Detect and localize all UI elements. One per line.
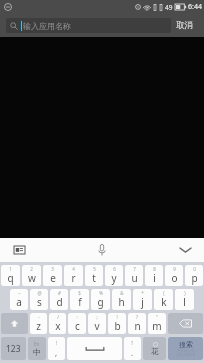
button[interactable]: Search (168, 337, 203, 360)
staticText: ) (184, 290, 186, 296)
button[interactable]: 7 (125, 265, 143, 286)
button[interactable]: En (28, 337, 46, 360)
staticText: w (28, 271, 36, 285)
button[interactable]: # (50, 289, 68, 310)
button[interactable]: / (49, 313, 66, 334)
button[interactable]: - (30, 313, 47, 334)
button[interactable]: " (148, 313, 166, 334)
staticText: z (36, 319, 41, 333)
button[interactable]: 取消 (171, 17, 198, 34)
button[interactable]: % (91, 289, 110, 310)
staticText: 搜索 (179, 340, 193, 349)
button[interactable]: 2 (22, 265, 41, 286)
button[interactable]: 5 (85, 265, 103, 286)
staticText: ~ (18, 290, 21, 296)
button[interactable]: 输入应用名称 (6, 18, 171, 33)
staticText: 花 (151, 347, 159, 356)
button[interactable]: ~ (10, 289, 28, 310)
staticText: o (171, 271, 178, 285)
button[interactable]: & (112, 289, 131, 310)
staticText: i (153, 271, 156, 285)
staticText: 49 (165, 3, 173, 12)
button[interactable]: Backspace (168, 313, 203, 334)
button[interactable]: 1 (1, 265, 20, 286)
staticText: f (78, 295, 82, 309)
staticText: n (134, 319, 141, 333)
button[interactable]: Voice input (91, 239, 113, 261)
button[interactable]: Clipboard (9, 240, 29, 260)
staticText: 输入应用名称 (23, 21, 71, 31)
button[interactable]: ) (175, 289, 194, 310)
staticText: v (94, 319, 100, 333)
button[interactable]: ? (124, 337, 141, 360)
staticText: j (141, 295, 144, 309)
button[interactable]: Shift (1, 313, 28, 334)
staticText: ? (136, 314, 138, 320)
staticText: En (34, 341, 40, 347)
staticText: - (38, 314, 40, 320)
button[interactable]: Hide keyboard (175, 240, 195, 260)
staticText: 123 (6, 343, 21, 355)
staticText: t (92, 271, 96, 285)
button[interactable]: Space (67, 337, 122, 360)
staticText: " (156, 314, 158, 320)
staticText: g (97, 295, 104, 309)
staticText: d (56, 295, 63, 309)
button[interactable]: 8 (145, 265, 163, 286)
button[interactable]: 花 (143, 337, 166, 360)
staticText: p (191, 271, 198, 285)
button[interactable]: 4 (64, 265, 83, 286)
staticText: c (75, 319, 80, 333)
staticText: 9 (173, 266, 176, 272)
button[interactable]: ! (48, 337, 65, 360)
staticText: 0 (193, 266, 196, 272)
staticText: 7 (133, 266, 136, 272)
staticText: , (55, 347, 58, 358)
staticText: 中 (33, 347, 41, 357)
staticText: 5 (93, 266, 96, 272)
staticText: @ (37, 290, 42, 296)
button[interactable]: ? (128, 313, 146, 334)
staticText: : (76, 314, 78, 320)
staticText: 1 (9, 266, 12, 272)
button[interactable]: ! (108, 313, 126, 334)
staticText: ! (56, 340, 58, 347)
staticText: $ (78, 290, 81, 296)
staticText: ! (116, 314, 118, 320)
staticText: a (16, 295, 22, 309)
button[interactable]: 123 (1, 337, 26, 360)
staticText: u (131, 271, 138, 285)
staticText: h (118, 295, 125, 309)
staticText: y (111, 271, 117, 285)
staticText: ( (163, 290, 165, 296)
button[interactable]: 3 (43, 265, 62, 286)
staticText: x (55, 319, 61, 333)
staticText: k (161, 295, 167, 309)
button[interactable]: ( (154, 289, 173, 310)
staticText: ; (96, 314, 98, 320)
button[interactable]: * (133, 289, 152, 310)
staticText: & (120, 290, 124, 296)
staticText: ? (131, 340, 134, 347)
staticText: e (50, 271, 56, 285)
staticText: % (99, 290, 103, 296)
button[interactable]: $ (70, 289, 89, 310)
button[interactable]: 9 (165, 265, 183, 286)
staticText: * (141, 290, 144, 296)
staticText: / (57, 314, 59, 320)
button[interactable]: ; (88, 313, 106, 334)
staticText: . (131, 347, 134, 358)
staticText: # (58, 290, 61, 296)
button[interactable]: 0 (185, 265, 203, 286)
staticText: m (152, 319, 162, 333)
button[interactable]: : (68, 313, 86, 334)
staticText: 6 (113, 266, 116, 272)
button[interactable]: @ (30, 289, 48, 310)
staticText: 2 (30, 266, 33, 272)
staticText: b (114, 319, 121, 333)
staticText: q (7, 271, 14, 285)
staticText: 6:44 (188, 2, 202, 12)
button[interactable]: 6 (105, 265, 123, 286)
staticText: l (183, 295, 186, 309)
